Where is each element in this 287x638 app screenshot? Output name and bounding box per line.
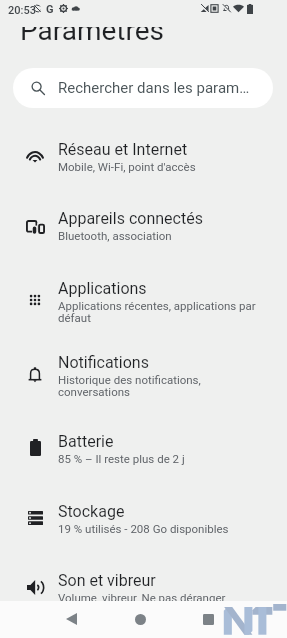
button[interactable] [0, 134, 287, 178]
staticText: 19 % utilisés - 208 Go disponibles [58, 522, 229, 535]
staticText: Applications récentes, applications par … [58, 299, 256, 324]
staticText: Réseau et Internet [58, 140, 188, 159]
staticText: Paramètres [20, 14, 165, 47]
button[interactable] [0, 566, 287, 610]
staticText: Notifications [58, 353, 149, 372]
staticText: Son et vibreur [58, 571, 156, 590]
staticText: Volume, vibreur, Ne pas déranger [58, 591, 226, 604]
staticText: Applications [58, 279, 147, 298]
button[interactable] [0, 277, 287, 321]
staticText: 20:53 [8, 4, 36, 17]
staticText: Bluetooth, association [58, 229, 172, 242]
staticText: Historique des notifications, conversati… [58, 373, 201, 398]
button[interactable]: Recent apps [190, 601, 226, 637]
button[interactable]: Home [122, 601, 158, 637]
button[interactable] [0, 205, 287, 249]
staticText: Stockage [58, 502, 125, 521]
staticText: Appareils connectés [58, 209, 203, 228]
button[interactable] [0, 353, 287, 397]
staticText: Rechercher dans les param… [58, 79, 250, 97]
staticText: G [46, 3, 54, 16]
button[interactable]: Back [53, 601, 89, 637]
staticText: 85 % – Il reste plus de 2 j [58, 452, 185, 465]
button[interactable] [0, 496, 287, 540]
staticText: Batterie [58, 432, 114, 451]
staticText: Mobile, Wi-Fi, point d'accès [58, 160, 196, 173]
button[interactable]: Rechercher dans les param… [13, 68, 273, 108]
button[interactable] [0, 425, 287, 469]
